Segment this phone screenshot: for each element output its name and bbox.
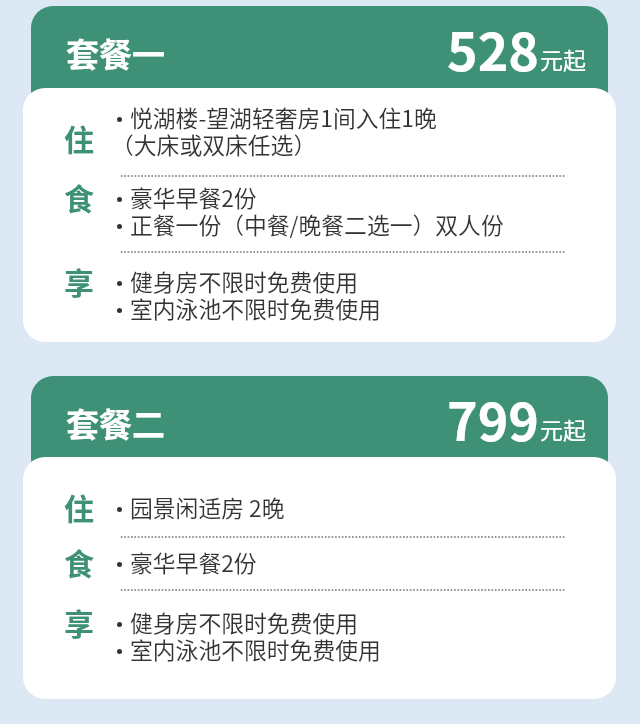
staticText: 室内泳池不限时免费使用 bbox=[130, 637, 381, 664]
other: 酒店套餐列表 bbox=[0, 0, 640, 724]
staticText: 健身房不限时免费使用 bbox=[130, 269, 358, 296]
staticText: 健身房不限时免费使用 bbox=[130, 610, 358, 637]
button[interactable] bbox=[23, 589, 616, 699]
staticText: 799 bbox=[447, 381, 540, 456]
staticText: 元起 bbox=[540, 42, 586, 75]
staticText: 套餐一 bbox=[66, 29, 165, 77]
staticText: （大床或双床任选） bbox=[111, 132, 317, 159]
staticText: 住 bbox=[64, 116, 94, 159]
button[interactable]: 套餐二 bbox=[31, 376, 608, 481]
staticText: 元起 bbox=[540, 412, 586, 445]
button[interactable] bbox=[23, 251, 616, 342]
staticText: 享 bbox=[64, 259, 94, 302]
staticText: 室内泳池不限时免费使用 bbox=[130, 296, 381, 323]
staticText: 住 bbox=[64, 485, 94, 528]
staticText: 528 bbox=[447, 11, 540, 86]
staticText: 食 bbox=[64, 175, 94, 218]
button[interactable]: 套餐一 bbox=[31, 6, 608, 112]
button[interactable] bbox=[23, 457, 616, 536]
button[interactable] bbox=[23, 175, 616, 251]
staticText: 正餐一份（中餐/晚餐二选一）双人份 bbox=[130, 212, 504, 239]
staticText: 悦湖楼-望湖轻奢房1间入住1晚 bbox=[130, 105, 437, 132]
button[interactable] bbox=[23, 88, 616, 175]
button[interactable] bbox=[23, 536, 616, 589]
staticText: 套餐二 bbox=[66, 399, 165, 447]
staticText: 豪华早餐2份 bbox=[130, 550, 257, 577]
staticText: 享 bbox=[64, 600, 94, 643]
staticText: 豪华早餐2份 bbox=[130, 185, 257, 212]
staticText: 食 bbox=[64, 540, 94, 583]
staticText: 园景闲适房 2晚 bbox=[130, 495, 285, 522]
